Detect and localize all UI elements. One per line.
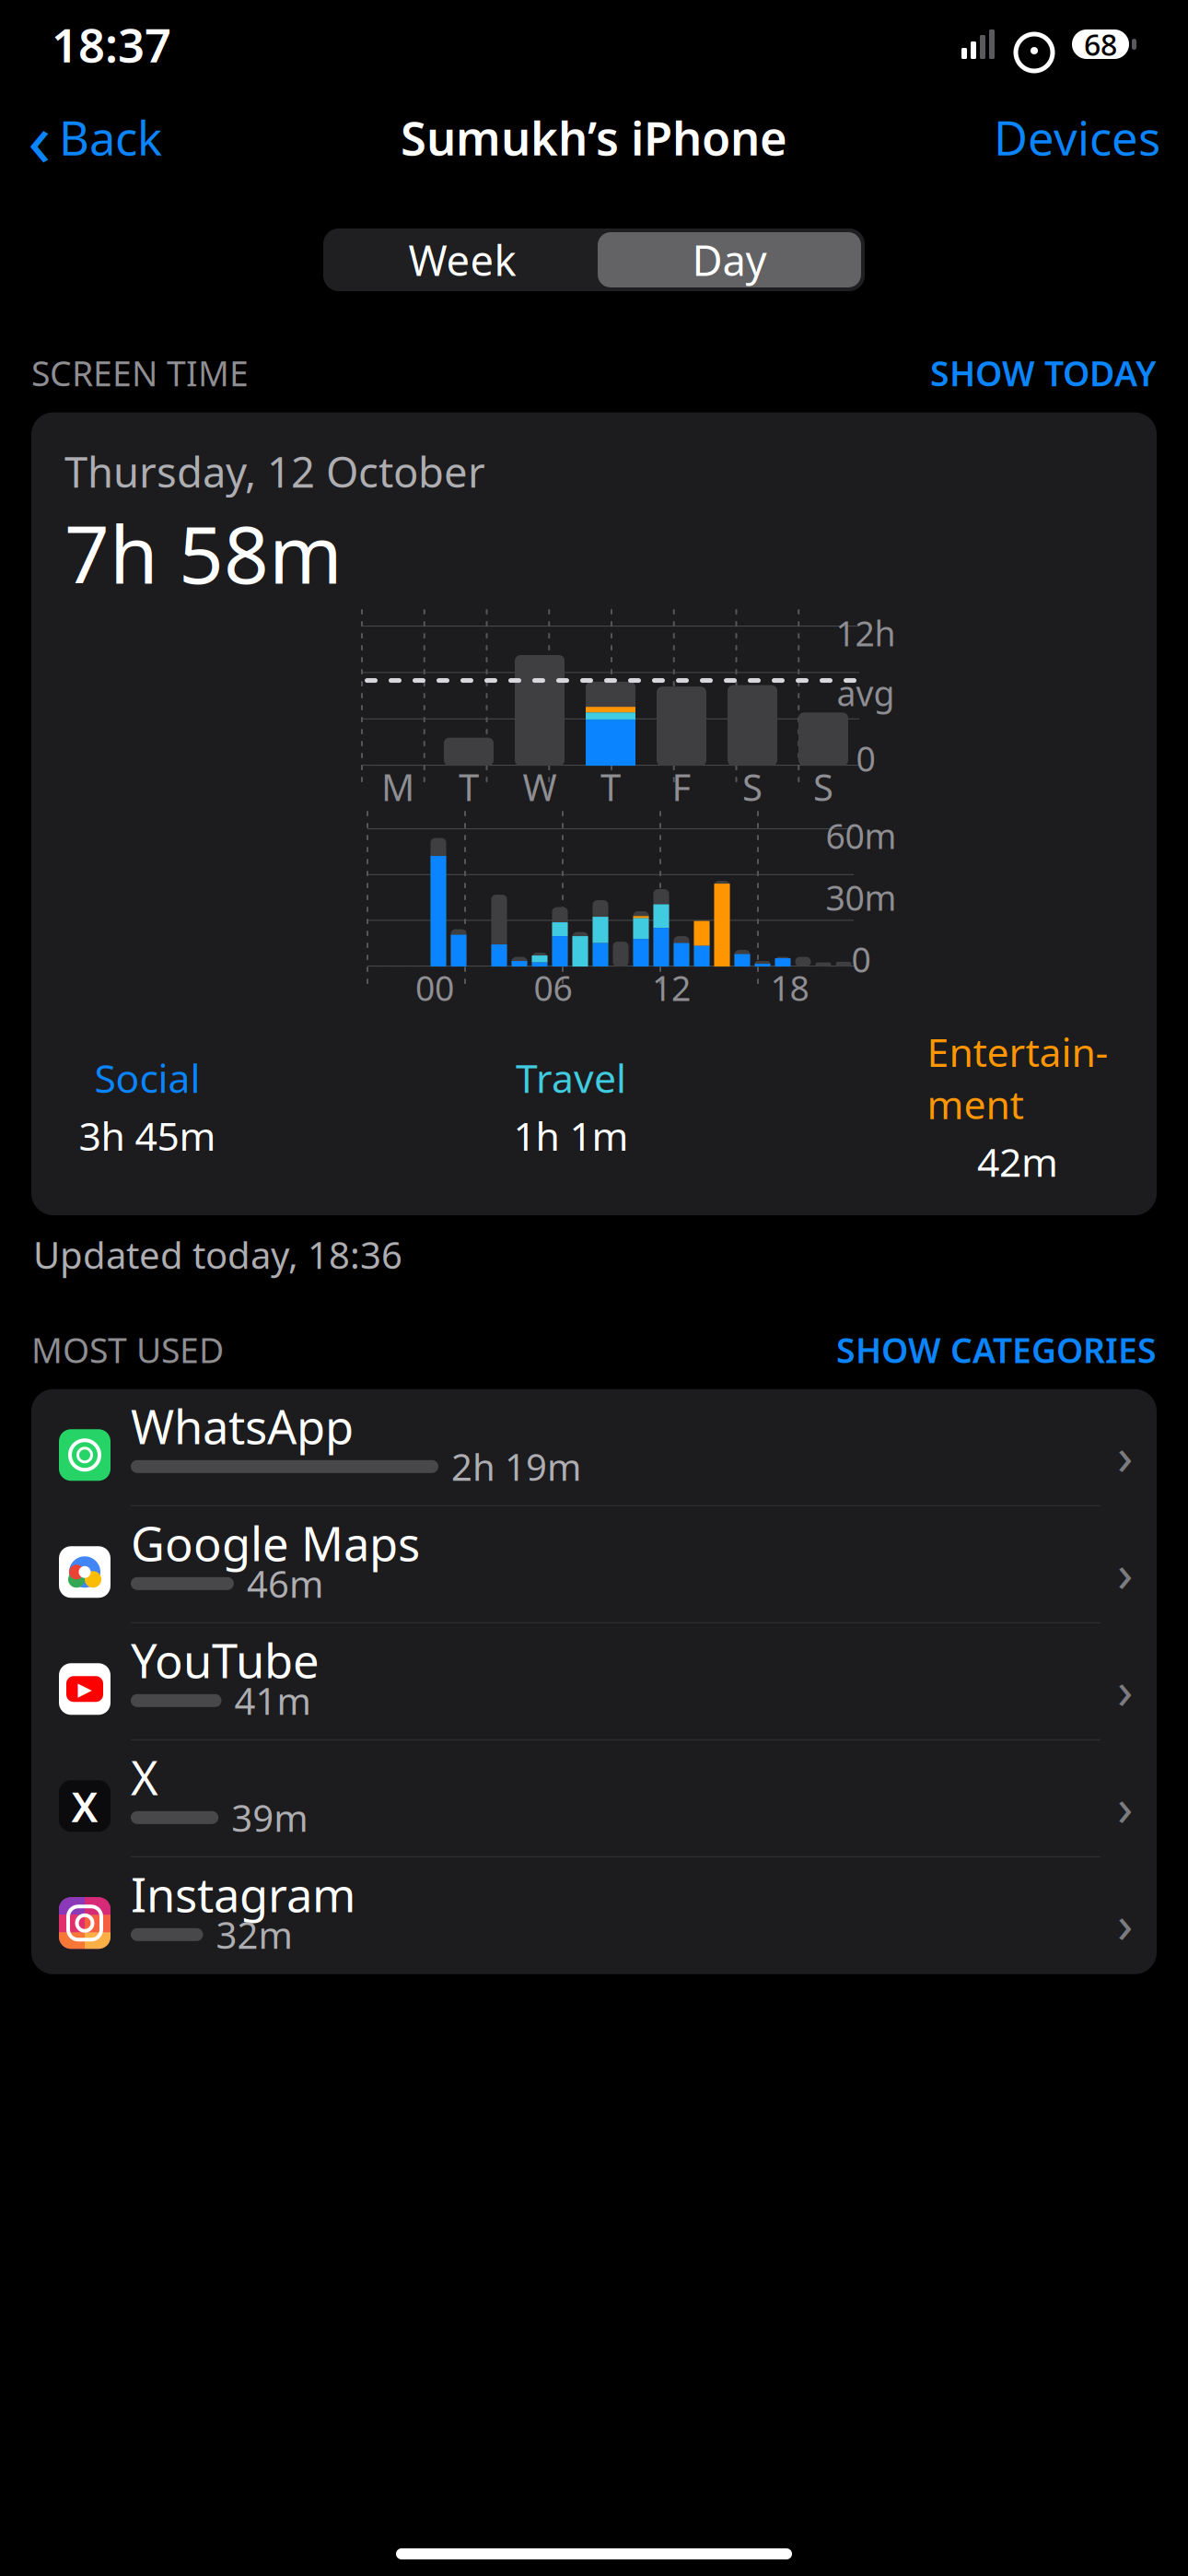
staticText: T <box>459 762 479 811</box>
staticText: 32m <box>216 1910 292 1959</box>
button[interactable]: Devices <box>988 99 1166 176</box>
button[interactable]: SHOW TODAY <box>930 346 1157 399</box>
staticText: Day <box>692 232 767 288</box>
button[interactable]: ‹ <box>22 79 168 195</box>
staticText: 60m <box>826 813 897 859</box>
staticText: avg <box>837 670 895 716</box>
button[interactable]: WhatsApp <box>31 1389 1157 1506</box>
staticText: Google Maps <box>131 1512 420 1574</box>
staticText: Back <box>59 106 162 168</box>
staticText: 1h 1m <box>513 1109 629 1162</box>
staticText: 18:37 <box>52 13 171 75</box>
staticText: 0 <box>856 735 875 781</box>
staticText: 42m <box>977 1135 1058 1188</box>
button[interactable]: Day <box>598 232 861 287</box>
staticText: MOST USED <box>31 1327 224 1373</box>
staticText: 41m <box>234 1676 311 1725</box>
staticText: SHOW CATEGORIES <box>836 1327 1157 1373</box>
staticText: › <box>1117 1772 1133 1840</box>
staticText: 00 <box>415 965 454 1011</box>
staticText: › <box>1117 1421 1133 1489</box>
button[interactable]: Google Maps <box>31 1506 1157 1623</box>
staticText: 7h 58m <box>64 501 343 605</box>
staticText: W <box>523 762 557 811</box>
button[interactable]: X <box>31 1740 1157 1857</box>
staticText: F <box>672 762 691 811</box>
staticText: › <box>1117 1655 1133 1723</box>
staticText: › <box>1117 1889 1133 1957</box>
staticText: 12 <box>652 965 691 1011</box>
staticText: ▶ <box>78 1679 92 1699</box>
staticText: Week <box>408 232 516 288</box>
staticText: Devices <box>994 106 1160 168</box>
staticText: S <box>742 762 763 811</box>
staticText: Sumukh’s iPhone <box>401 106 787 168</box>
staticText: 18 <box>770 965 809 1011</box>
staticText: T <box>600 762 621 811</box>
staticText: SCREEN TIME <box>31 350 249 396</box>
staticText: 46m <box>247 1559 323 1608</box>
staticText: 12h <box>836 610 896 656</box>
staticText: X <box>131 1746 158 1808</box>
staticText: 39m <box>231 1793 308 1842</box>
button[interactable]: Week <box>327 232 598 287</box>
staticText: Social <box>94 1052 200 1104</box>
staticText: ‹ <box>28 87 52 188</box>
staticText: Instagram <box>131 1863 355 1925</box>
staticText: Entertainment <box>927 1026 1108 1130</box>
staticText: 2h 19m <box>451 1442 581 1491</box>
staticText: 30m <box>826 875 897 920</box>
staticText: 68 <box>1084 25 1117 64</box>
staticText: SHOW TODAY <box>930 350 1157 396</box>
staticText: YouTube <box>131 1629 320 1691</box>
staticText: 3h 45m <box>79 1109 216 1162</box>
staticText: › <box>1117 1538 1133 1606</box>
staticText: 0 <box>851 936 871 982</box>
staticText: WhatsApp <box>131 1395 354 1457</box>
staticText: Updated today, 18:36 <box>33 1230 402 1279</box>
staticText: Travel <box>516 1052 626 1104</box>
button[interactable]: ▶ <box>31 1623 1157 1740</box>
staticText: Thursday, 12 October <box>64 444 485 499</box>
staticText: S <box>813 762 833 811</box>
staticText: 06 <box>534 965 572 1011</box>
button[interactable]: SHOW CATEGORIES <box>836 1323 1157 1376</box>
staticText: M <box>381 762 414 811</box>
button[interactable]: Instagram <box>31 1857 1157 1974</box>
staticText: X <box>71 1778 98 1834</box>
